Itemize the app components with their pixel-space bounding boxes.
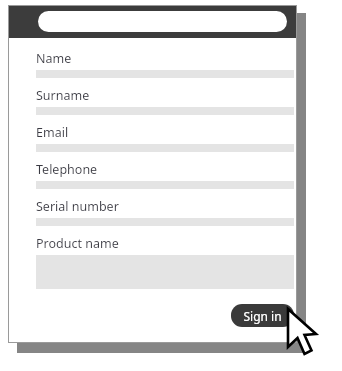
- staticText: Telephone: [36, 161, 98, 178]
- button[interactable]: Search: [38, 11, 287, 32]
- staticText: Serial number: [36, 198, 119, 215]
- button[interactable]: Sign in: [231, 304, 294, 327]
- staticText: Name: [36, 50, 72, 67]
- staticText: Email: [36, 124, 69, 141]
- staticText: Product name: [36, 235, 119, 252]
- staticText: Surname: [36, 87, 90, 104]
- staticText: Sign in: [243, 308, 282, 324]
